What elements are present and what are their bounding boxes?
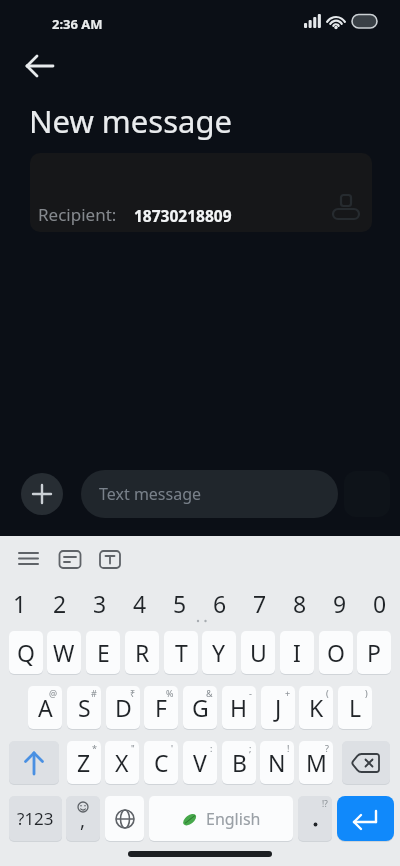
staticText: # <box>91 687 97 699</box>
staticText: English <box>206 808 261 830</box>
button[interactable]: 5 <box>160 582 200 624</box>
button[interactable]: 3 <box>80 582 120 624</box>
staticText: A <box>38 692 53 723</box>
staticText: R <box>135 637 150 668</box>
button[interactable]: U <box>241 631 275 674</box>
button[interactable]: R <box>125 631 159 674</box>
button[interactable]: 8 <box>280 582 320 624</box>
button[interactable]: I <box>280 631 314 674</box>
staticText: F <box>155 692 167 723</box>
button[interactable] <box>337 796 394 841</box>
staticText: E <box>97 637 110 668</box>
button[interactable]: , <box>66 796 100 841</box>
button[interactable]: J <box>261 686 295 729</box>
staticText: ? <box>325 742 329 754</box>
button[interactable]: 9 <box>320 582 360 624</box>
button[interactable]: 4 <box>120 582 160 624</box>
button[interactable]: 0 <box>360 582 400 624</box>
staticText: 5 <box>173 588 187 619</box>
button[interactable] <box>9 741 59 784</box>
staticText: P <box>367 637 381 668</box>
button[interactable]: L <box>338 686 372 729</box>
button[interactable] <box>95 541 125 571</box>
staticText: C <box>154 747 169 778</box>
staticText: - <box>249 687 252 699</box>
button[interactable]: English <box>149 796 293 841</box>
staticText: : <box>210 742 213 754</box>
button[interactable]: Text message <box>81 470 338 518</box>
button[interactable]: N <box>260 741 294 784</box>
staticText: K <box>309 692 324 723</box>
staticText: V <box>193 747 207 778</box>
button[interactable]: D <box>106 686 140 729</box>
staticText: I <box>293 637 301 668</box>
button[interactable] <box>342 741 390 784</box>
staticText: * <box>92 742 97 754</box>
button[interactable]: 7 <box>240 582 280 624</box>
staticText: T <box>175 637 188 668</box>
staticText: ?123 <box>17 807 54 830</box>
staticText: ; <box>249 742 252 754</box>
staticText: 9 <box>333 588 347 619</box>
button[interactable]: K <box>299 686 333 729</box>
button[interactable]: V <box>183 741 217 784</box>
button[interactable]: ?123 <box>9 796 62 841</box>
staticText: 0 <box>373 588 387 619</box>
staticText: S <box>78 692 91 723</box>
staticText: H <box>230 692 248 723</box>
button[interactable]: O <box>319 631 353 674</box>
staticText: + <box>285 687 291 699</box>
staticText: G <box>192 692 209 723</box>
button[interactable]: 1 <box>0 582 40 624</box>
button[interactable] <box>10 541 48 571</box>
button[interactable]: W <box>47 631 81 674</box>
button[interactable]: X <box>105 741 139 784</box>
button[interactable] <box>55 541 85 571</box>
staticText: 7 <box>253 588 267 619</box>
button[interactable]: T <box>164 631 198 674</box>
staticText: N <box>268 747 286 778</box>
button[interactable]: M <box>299 741 333 784</box>
staticText: Y <box>212 637 226 668</box>
staticText: ( <box>326 687 329 699</box>
staticText: M <box>306 747 327 778</box>
button[interactable]: F <box>144 686 178 729</box>
button[interactable] <box>21 473 63 515</box>
staticText: ₹ <box>130 687 136 699</box>
staticText: D <box>115 692 132 723</box>
staticText: Z <box>77 747 91 778</box>
button[interactable]: B <box>222 741 256 784</box>
button[interactable] <box>18 48 62 86</box>
button[interactable]: 6 <box>200 582 240 624</box>
staticText: Text message <box>99 483 202 505</box>
button[interactable]: 2 <box>40 582 80 624</box>
staticText: X <box>115 747 129 778</box>
button[interactable]: C <box>144 741 178 784</box>
staticText: New message <box>29 100 232 142</box>
button[interactable]: H <box>222 686 256 729</box>
staticText: !? <box>322 798 328 809</box>
staticText: % <box>166 687 174 699</box>
button[interactable]: G <box>183 686 217 729</box>
button[interactable]: E <box>86 631 120 674</box>
button[interactable]: !? <box>298 796 332 841</box>
button[interactable] <box>105 796 144 841</box>
button[interactable]: Q <box>9 631 43 674</box>
staticText: Q <box>17 637 35 668</box>
staticText: 8 <box>293 588 307 619</box>
button[interactable]: Recipient: <box>30 153 372 232</box>
button[interactable]: Z <box>67 741 101 784</box>
staticText: @ <box>49 687 58 699</box>
staticText: 3 <box>93 588 107 619</box>
staticText: W <box>53 637 75 668</box>
button[interactable]: A <box>28 686 62 729</box>
staticText: O <box>327 637 345 668</box>
button[interactable]: P <box>357 631 391 674</box>
staticText: , <box>80 807 86 833</box>
button[interactable]: Y <box>202 631 236 674</box>
staticText: 2:36 AM <box>52 15 103 33</box>
button[interactable]: S <box>67 686 101 729</box>
staticText: 1 <box>13 588 27 619</box>
staticText: 6 <box>213 588 227 619</box>
